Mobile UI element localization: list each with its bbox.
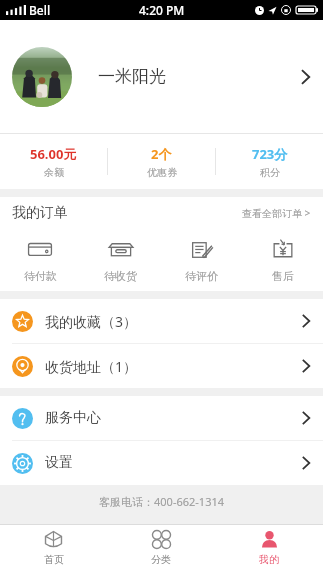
staticText: 2个 [151,145,172,163]
staticText: 售后 [272,269,294,283]
button[interactable]: 待评价 [161,229,242,291]
staticText: 我的 [259,553,279,566]
staticText: 查看全部订单 > [242,206,311,220]
staticText: 待评价 [185,269,218,283]
button[interactable]: 一米阳光 [0,20,323,133]
staticText: 服务中心 [45,409,101,427]
button[interactable]: 待收货 [80,229,161,291]
staticText: 优惠券 [147,166,177,179]
button[interactable]: 56.00元 [0,134,107,189]
staticText: Bell [29,2,51,18]
staticText: 4:20 PM [139,2,185,18]
staticText: 56.00元 [30,145,77,163]
staticText: 一米阳光 [98,66,166,87]
staticText: 客服电话：400-662-1314 [99,494,225,509]
button[interactable]: 查看全部订单 > [242,206,311,220]
button[interactable]: 售后 [242,229,323,291]
staticText: 首页 [44,553,64,566]
button[interactable]: 分类 [107,525,215,569]
staticText: 收货地址（1） [45,357,138,376]
staticText: 积分 [260,166,280,179]
staticText: 我的收藏（3） [45,312,138,331]
button[interactable]: 首页 [0,525,107,569]
staticText: 设置 [45,454,73,472]
staticText: 我的订单 [12,204,68,222]
button[interactable]: 设置 [0,441,323,485]
staticText: 待收货 [104,269,137,283]
button[interactable]: 2个 [108,134,215,189]
button[interactable]: 收货地址（1） [0,344,323,388]
staticText: 待付款 [24,269,57,283]
button[interactable]: 723分 [216,134,323,189]
button[interactable]: 我的收藏（3） [0,299,323,343]
staticText: 723分 [252,145,288,163]
staticText: 分类 [151,553,171,566]
staticText: 余额 [44,166,64,179]
button[interactable]: 服务中心 [0,396,323,440]
button[interactable]: 我的 [215,525,323,569]
button[interactable]: 待付款 [0,229,80,291]
